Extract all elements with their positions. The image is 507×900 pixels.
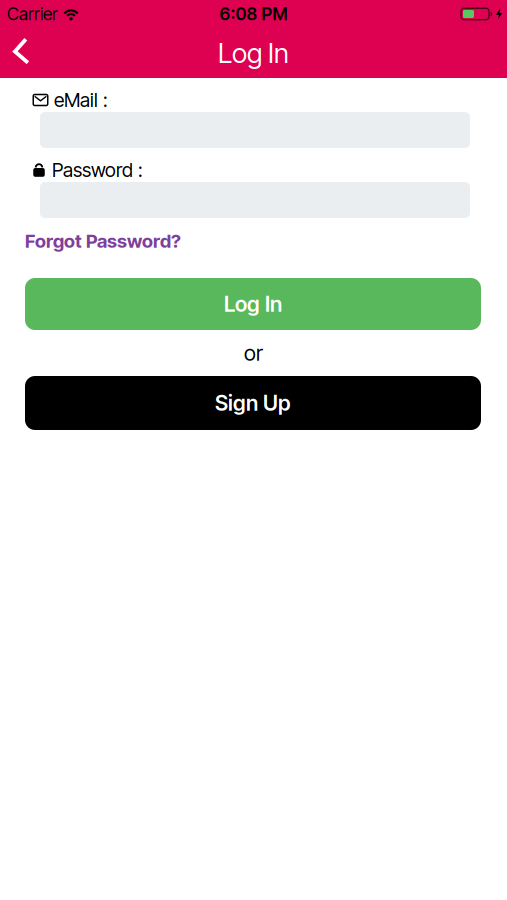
button[interactable]: Forgot Password?: [25, 230, 181, 252]
staticText: or: [244, 341, 263, 365]
staticText: 6:08 PM: [219, 4, 287, 24]
staticText: Log In: [224, 292, 282, 316]
staticText: Carrier: [7, 4, 58, 24]
staticText: Sign Up: [215, 391, 291, 415]
button[interactable]: Sign Up: [25, 376, 481, 430]
staticText: eMail :: [54, 89, 108, 111]
staticText: Forgot Password?: [25, 230, 181, 252]
button[interactable]: Back: [0, 28, 43, 78]
staticText: Log In: [218, 37, 289, 69]
button[interactable]: Log In: [25, 278, 481, 330]
staticText: Password :: [52, 159, 143, 181]
